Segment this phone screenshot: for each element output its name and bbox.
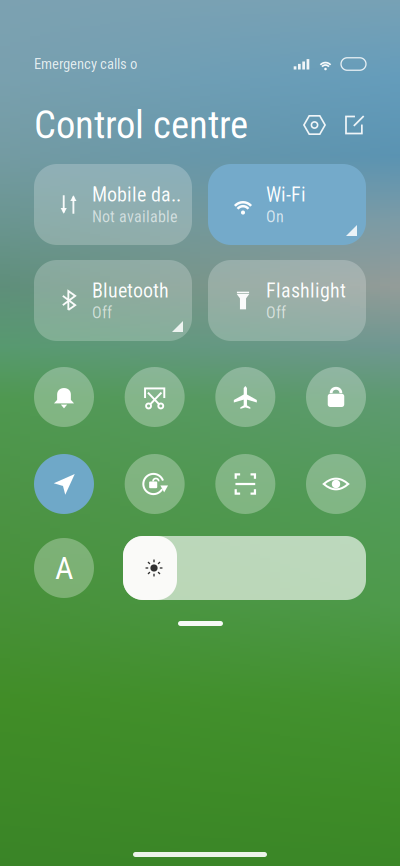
button[interactable]: Reading mode	[306, 454, 366, 514]
button[interactable]: Aeroplane mode	[215, 367, 275, 427]
staticText: Not available	[92, 207, 178, 226]
staticText: Bluetooth	[92, 279, 169, 302]
button[interactable]: Bluetooth	[34, 260, 192, 341]
staticText: Emergency calls o	[34, 55, 137, 73]
staticText: Flashlight	[266, 279, 346, 302]
button[interactable]: Location	[34, 454, 94, 514]
staticText: Mobile da..	[92, 183, 181, 206]
button[interactable]: Do not disturb	[34, 367, 94, 427]
button[interactable]: Scan	[215, 454, 275, 514]
staticText: Off	[92, 303, 112, 322]
button[interactable]: Settings	[303, 113, 326, 136]
button[interactable]: Mobile da..	[34, 164, 192, 245]
button[interactable]: Flashlight	[208, 260, 366, 341]
button[interactable]: Screenshot	[125, 367, 185, 427]
staticText: Wi-Fi	[266, 183, 306, 206]
button[interactable]: Wi-Fi	[208, 164, 366, 245]
button[interactable]: Auto-rotate	[125, 454, 185, 514]
staticText: Off	[266, 303, 286, 322]
button[interactable]: Screen lock	[306, 367, 366, 427]
staticText: A	[55, 549, 73, 587]
button[interactable]: Auto brightness	[34, 538, 94, 598]
button[interactable]: Edit	[343, 113, 366, 136]
staticText: On	[266, 207, 284, 226]
button[interactable]: Brightness	[123, 536, 366, 600]
staticText: Control centre	[34, 102, 248, 148]
